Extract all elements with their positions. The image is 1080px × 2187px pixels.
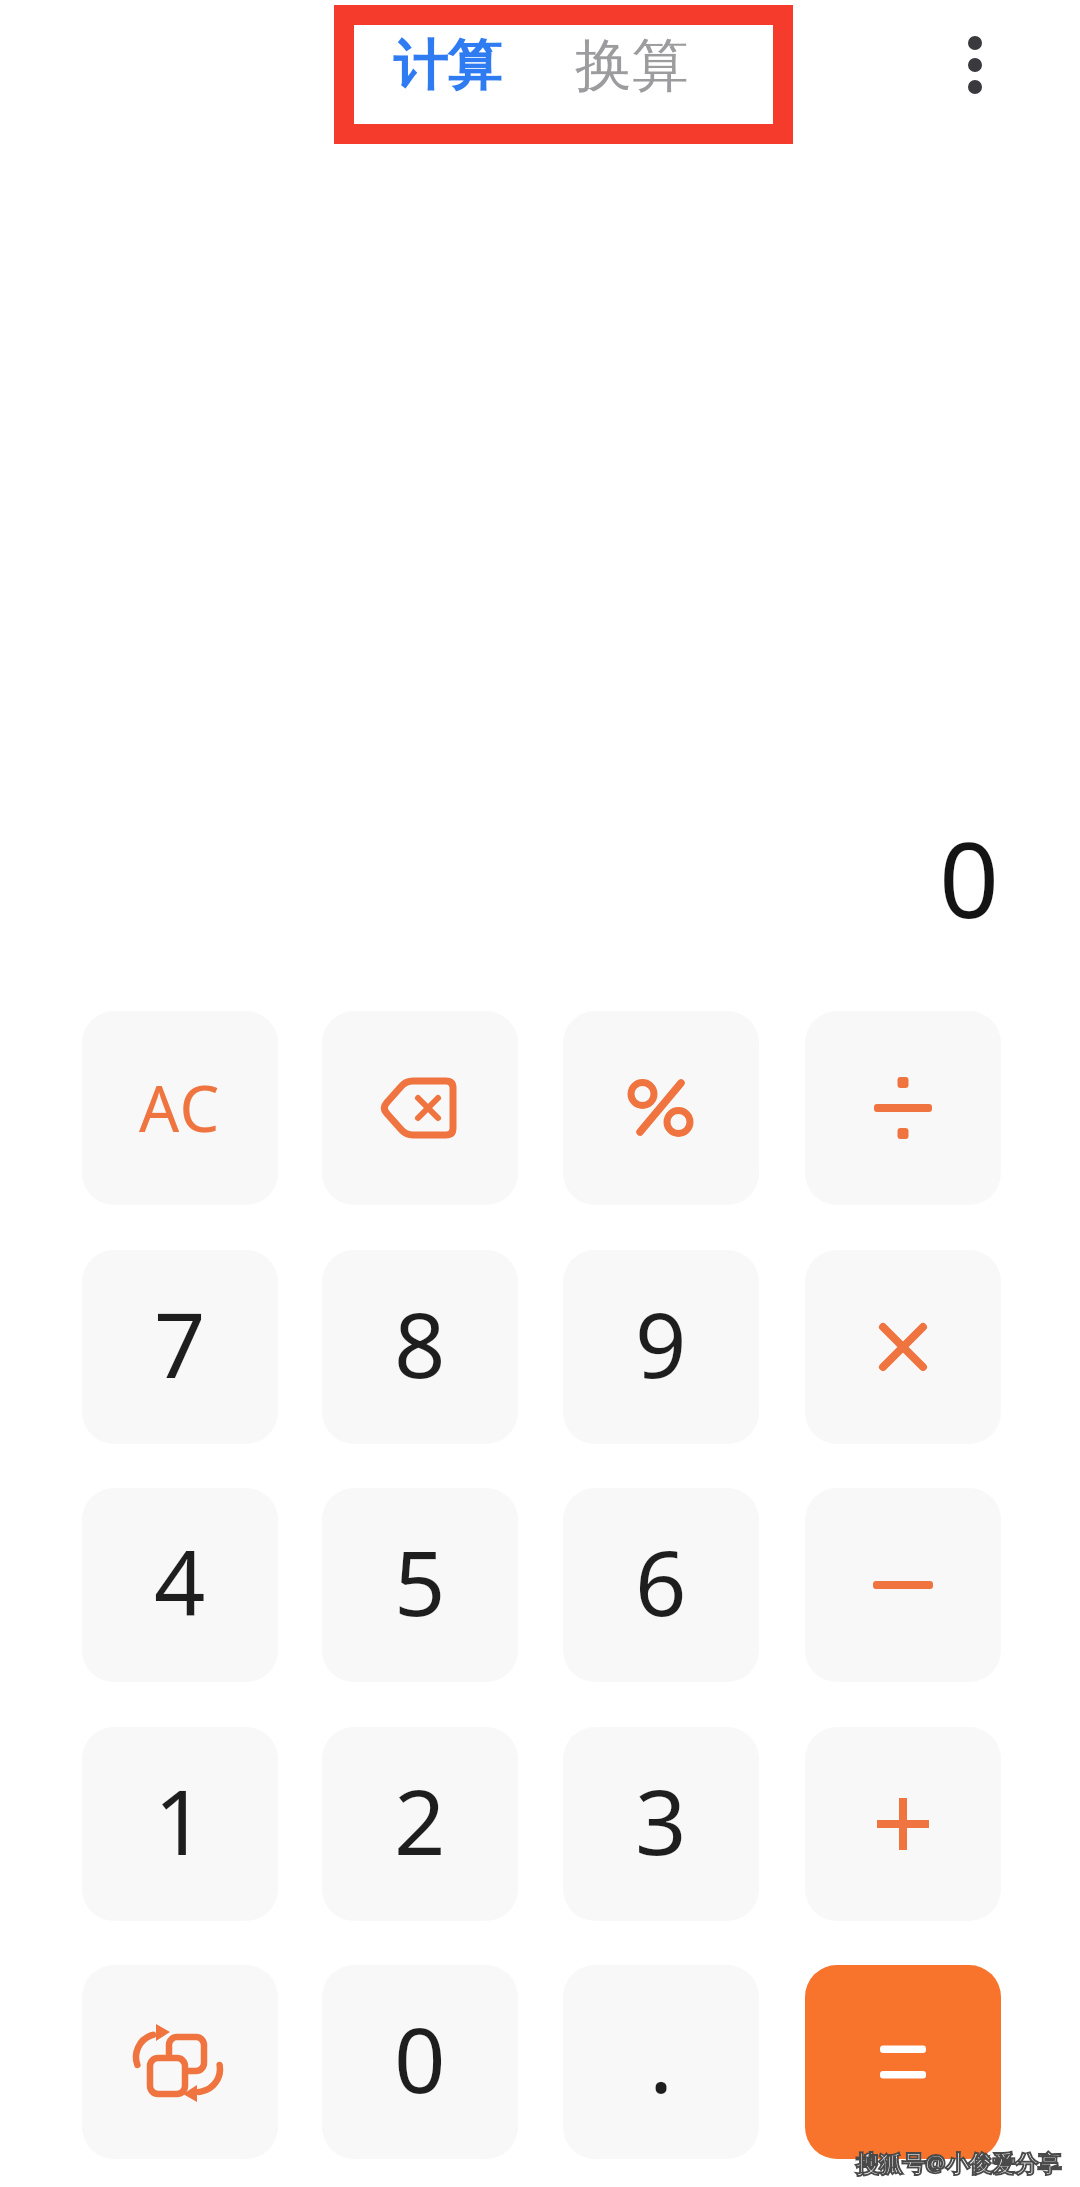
staticText: 8 xyxy=(394,1282,446,1405)
staticText: 0 xyxy=(394,1997,446,2120)
button[interactable]: AC xyxy=(82,1011,278,1205)
button[interactable]: 7 xyxy=(82,1250,278,1444)
staticText: 搜狐号@小俊爱分享 xyxy=(856,2147,1061,2178)
button[interactable] xyxy=(805,1488,1001,1682)
staticText: 1 xyxy=(154,1759,206,1882)
button[interactable]: 2 xyxy=(322,1727,518,1921)
staticText: 5 xyxy=(394,1520,446,1643)
button[interactable]: 9 xyxy=(563,1250,759,1444)
staticText: 2 xyxy=(394,1759,446,1882)
staticText: 4 xyxy=(154,1520,206,1643)
button[interactable]: 8 xyxy=(322,1250,518,1444)
button[interactable] xyxy=(82,1965,278,2159)
button[interactable]: 3 xyxy=(563,1727,759,1921)
staticText: 0 xyxy=(939,806,1000,949)
button[interactable]: 计算 xyxy=(352,18,542,113)
staticText: 计算 xyxy=(393,32,501,100)
staticText: 搜狐号@小俊爱分享 xyxy=(856,2147,1061,2178)
button[interactable] xyxy=(805,1250,1001,1444)
button[interactable]: 1 xyxy=(82,1727,278,1921)
button[interactable]: 5 xyxy=(322,1488,518,1682)
button[interactable] xyxy=(951,20,999,112)
staticText: . xyxy=(649,1997,674,2120)
button[interactable] xyxy=(322,1011,518,1205)
staticText: 6 xyxy=(635,1520,687,1643)
button[interactable]: . xyxy=(563,1965,759,2159)
button[interactable]: 0 xyxy=(322,1965,518,2159)
button[interactable]: 4 xyxy=(82,1488,278,1682)
button[interactable] xyxy=(805,1965,1001,2159)
button[interactable] xyxy=(563,1011,759,1205)
button[interactable] xyxy=(805,1011,1001,1205)
button[interactable]: 6 xyxy=(563,1488,759,1682)
button[interactable]: 换算 xyxy=(537,18,727,113)
staticText: 7 xyxy=(154,1282,206,1405)
staticText: 9 xyxy=(635,1282,687,1405)
button[interactable] xyxy=(805,1727,1001,1921)
staticText: 3 xyxy=(635,1759,687,1882)
staticText: 换算 xyxy=(575,30,689,102)
staticText: AC xyxy=(139,1065,221,1151)
